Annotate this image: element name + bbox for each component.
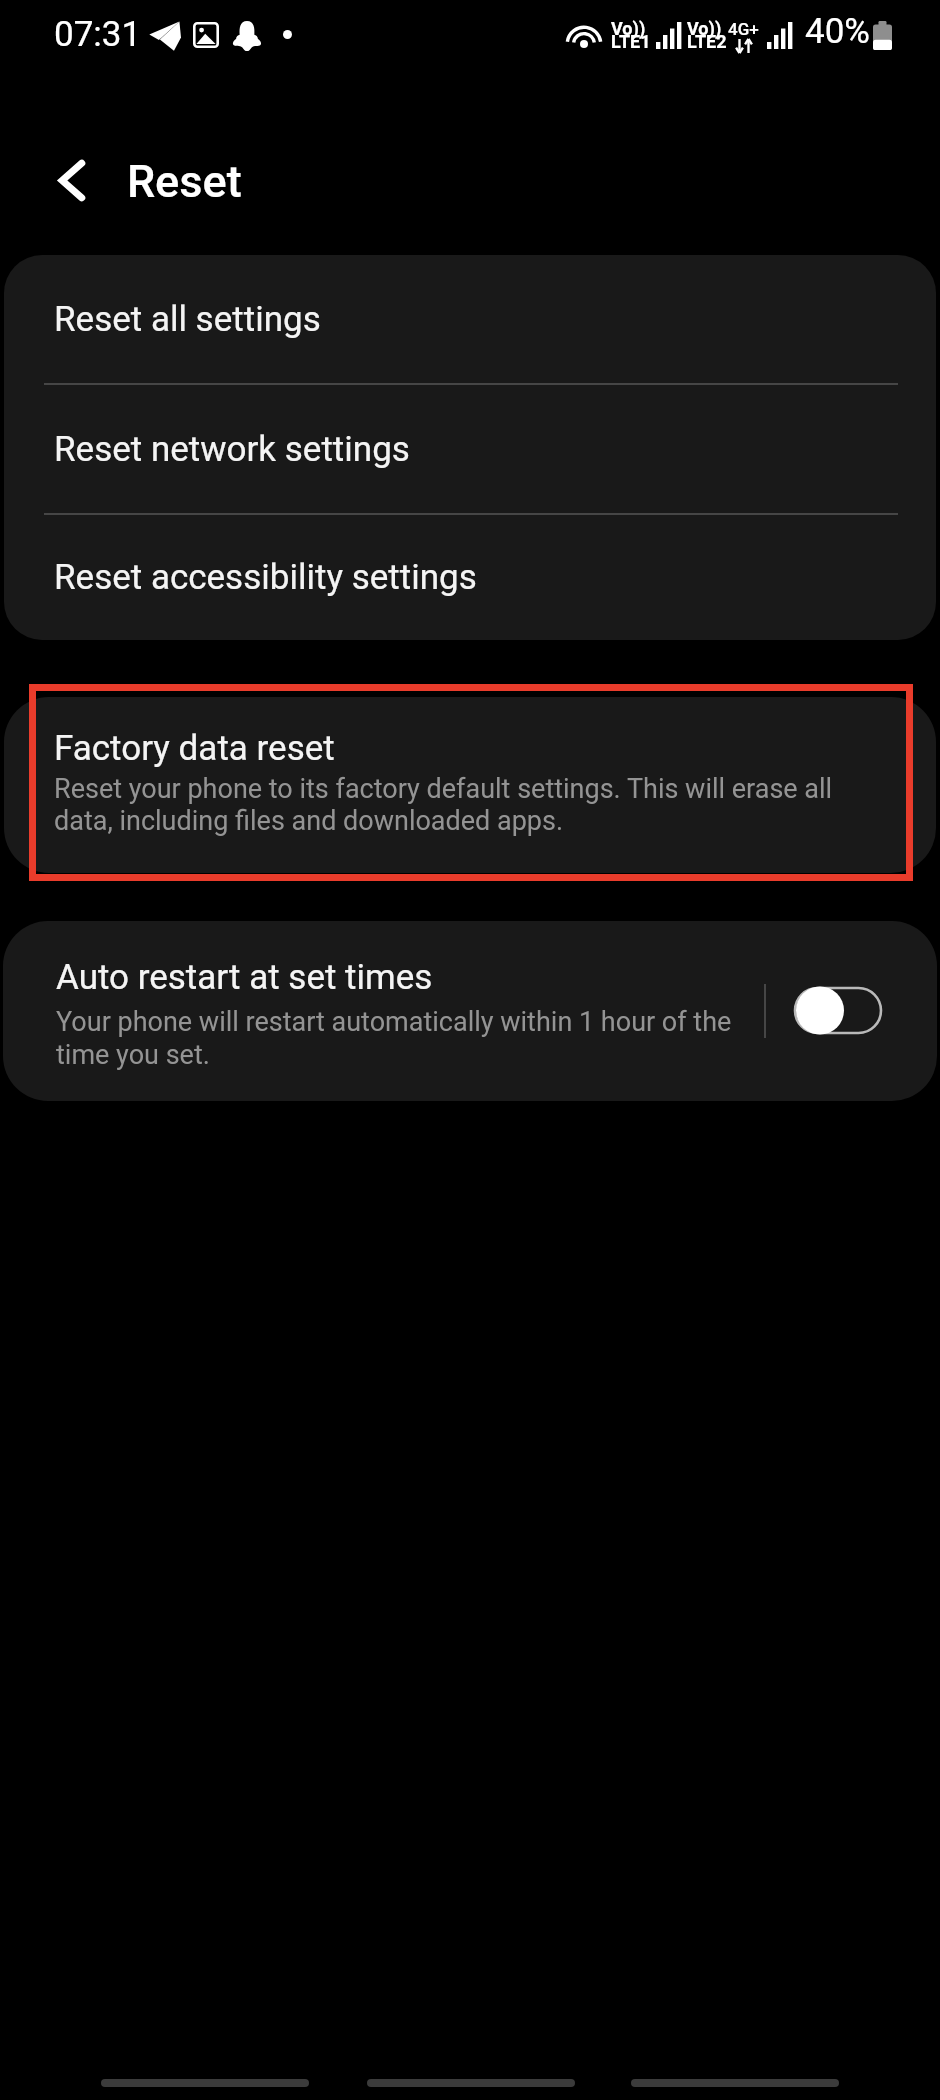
button[interactable]: Reset all settings [4, 255, 936, 383]
staticText: LTE2 [687, 31, 727, 52]
staticText: Reset accessibility settings [54, 557, 477, 598]
button[interactable]: Recent apps [101, 2079, 309, 2087]
staticText: Factory data reset [54, 728, 335, 769]
button[interactable]: Navigate up [28, 136, 116, 224]
staticText: 07:31 [54, 14, 142, 55]
staticText: Reset your phone to its factory default … [54, 773, 854, 837]
staticText: Vo)) [687, 18, 722, 39]
button[interactable]: Home [367, 2079, 575, 2087]
button[interactable]: Reset accessibility settings [4, 515, 936, 640]
staticText: 40% [805, 11, 870, 52]
staticText: Reset [127, 155, 242, 208]
staticText: 4G+ [728, 19, 759, 39]
button[interactable]: Back [631, 2079, 839, 2087]
button[interactable]: Factory data reset [4, 697, 936, 873]
button[interactable]: Reset network settings [4, 385, 936, 513]
staticText: Reset network settings [54, 429, 410, 470]
staticText: Auto restart at set times [56, 957, 433, 998]
staticText: LTE1 [611, 31, 651, 52]
staticText: Reset all settings [54, 299, 321, 340]
button[interactable]: Auto restart at set times, off [789, 961, 899, 1061]
staticText: Vo)) [611, 18, 646, 39]
staticText: Your phone will restart automatically wi… [56, 1006, 756, 1071]
button[interactable]: Auto restart at set times [3, 921, 937, 1101]
